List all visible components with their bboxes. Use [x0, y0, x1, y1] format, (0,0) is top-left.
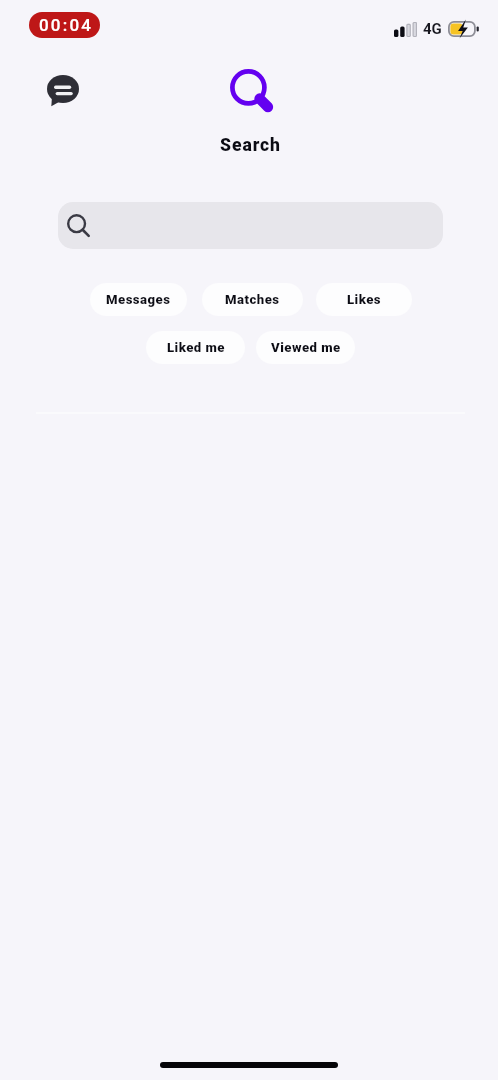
staticText: Search	[220, 135, 281, 156]
button[interactable]: Messages	[90, 283, 187, 316]
button[interactable]: Matches	[202, 283, 303, 316]
staticText: 4G	[423, 20, 442, 38]
button[interactable]: Search field	[58, 202, 443, 249]
button[interactable]: Viewed me	[256, 331, 355, 364]
staticText: 00:04	[39, 15, 94, 35]
staticText: Likes	[347, 292, 382, 307]
staticText: Matches	[225, 292, 280, 307]
staticText: Messages	[106, 292, 171, 307]
button[interactable]: Likes	[316, 283, 412, 316]
staticText: Liked me	[167, 340, 225, 355]
button[interactable]: Messages	[47, 72, 85, 110]
button[interactable]: Liked me	[146, 331, 245, 364]
staticText: Viewed me	[271, 340, 341, 355]
